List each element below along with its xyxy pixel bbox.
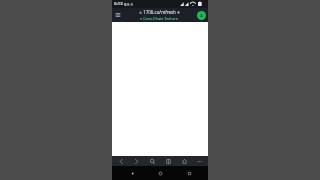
button[interactable]: Home: [151, 166, 169, 180]
button[interactable]: 1706.cu/refresh: [124, 8, 194, 22]
button[interactable]: Home: [177, 156, 191, 166]
button[interactable]: Tabs: [161, 156, 175, 166]
staticText: 6:13: [114, 1, 123, 7]
staticText: 1706.cu/refresh: [143, 9, 176, 15]
button[interactable]: Account: [194, 8, 208, 22]
button[interactable]: More options: [192, 156, 206, 166]
button[interactable]: Recent apps: [180, 166, 198, 180]
button[interactable]: Menu: [112, 8, 124, 22]
staticText: Conv.Chain.Texture: [143, 16, 178, 21]
button[interactable]: Search: [145, 156, 159, 166]
button[interactable]: Back: [123, 166, 141, 180]
button[interactable]: Back: [114, 156, 128, 166]
button[interactable]: Forward: [129, 156, 143, 166]
